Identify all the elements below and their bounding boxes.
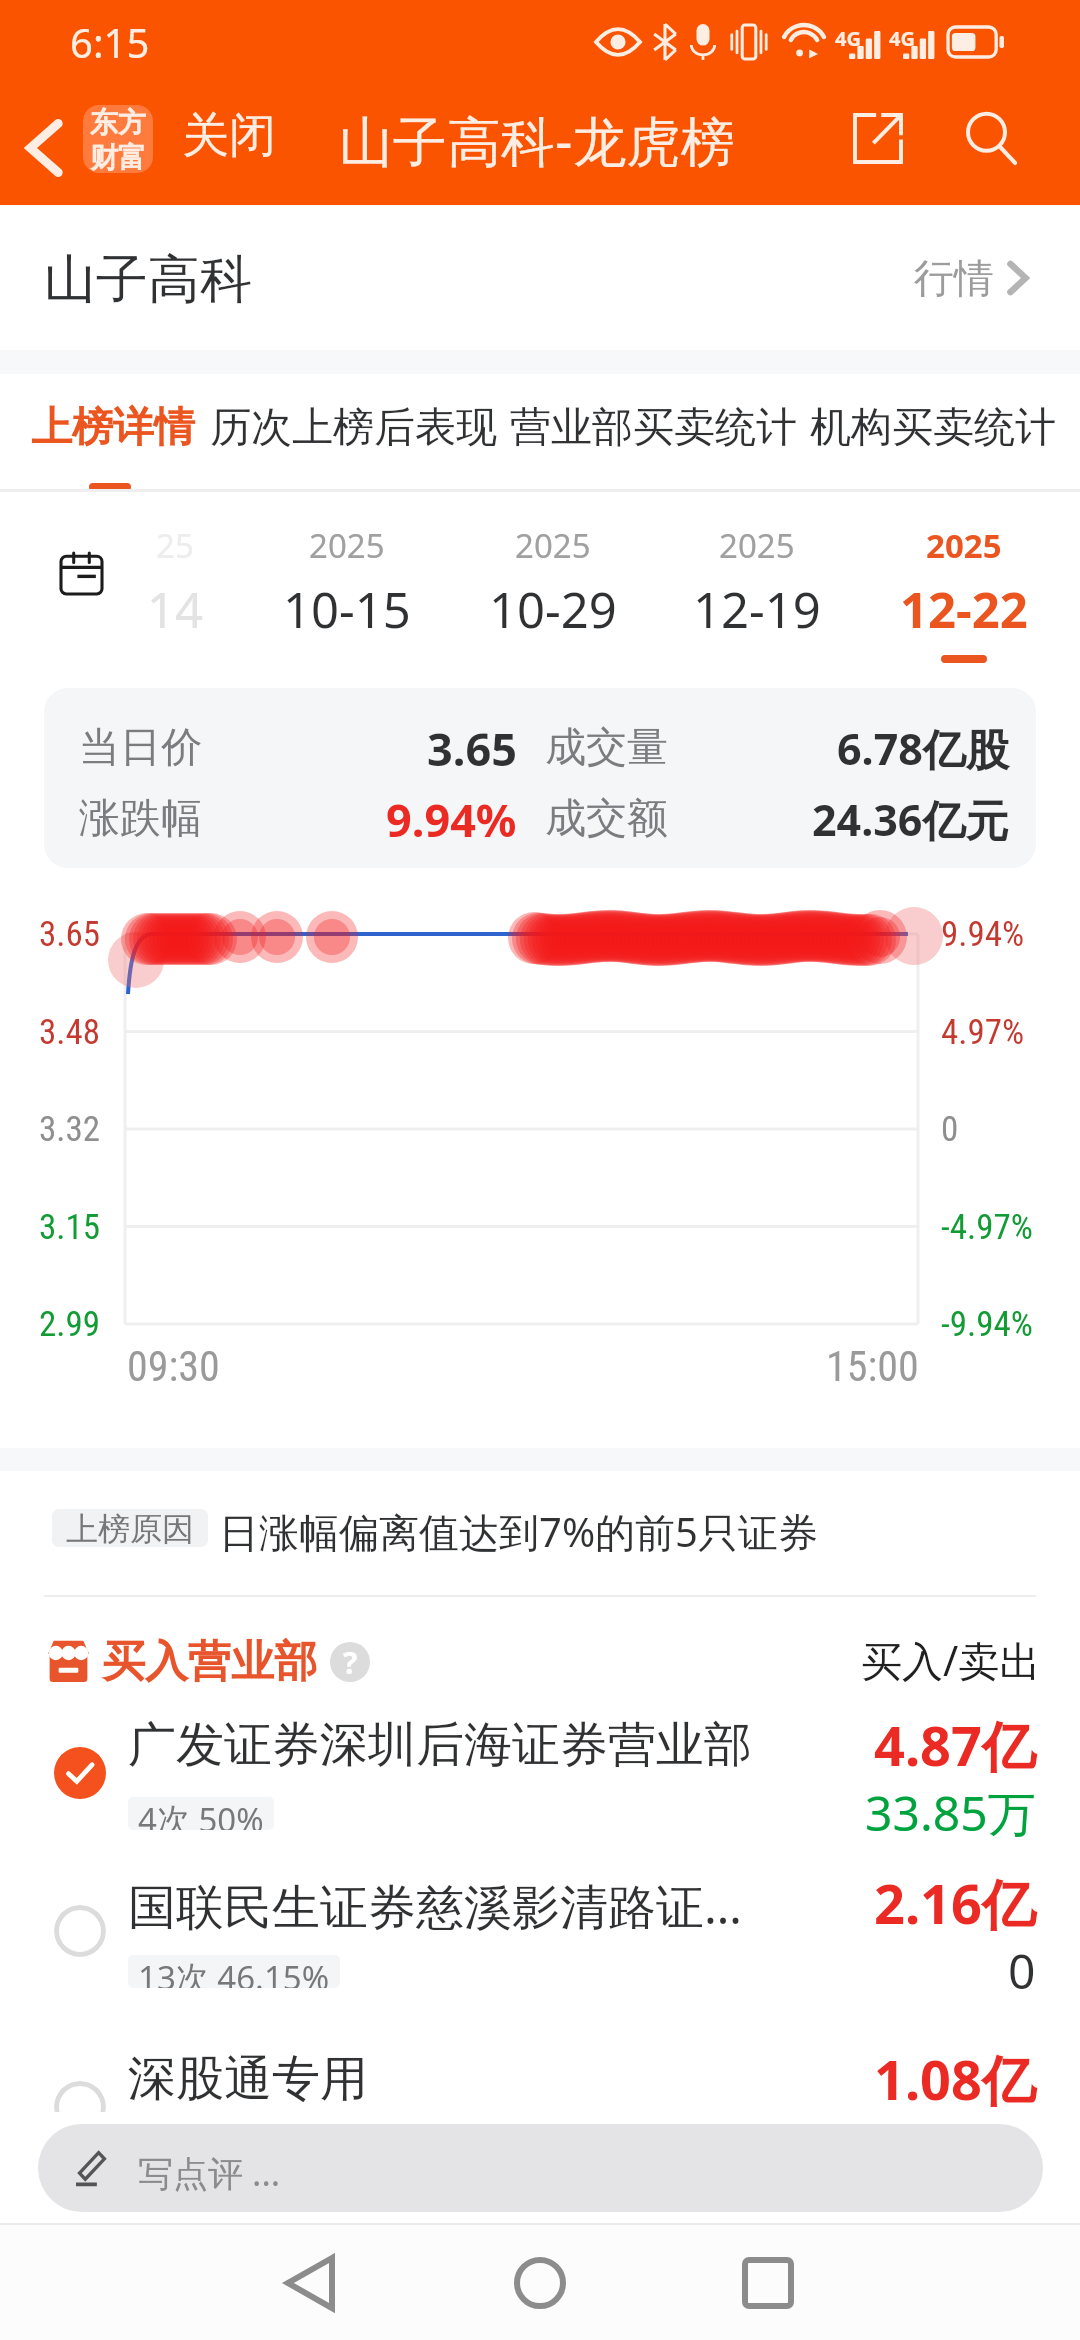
button[interactable]: 东方财富	[83, 105, 153, 173]
staticText: 写点评 ...	[138, 2149, 281, 2197]
staticText: 10-15	[283, 576, 411, 643]
staticText: 2025	[719, 523, 795, 568]
staticText: 3.32	[39, 1109, 101, 1150]
button[interactable]: Calendar	[44, 536, 118, 610]
staticText: 广发证券深圳后海证券营业部	[128, 1715, 752, 1775]
staticText: 国联民生证券慈溪影清路证…	[128, 1873, 742, 1939]
staticText: 12-19	[693, 576, 821, 643]
staticText: 山子高科-龙虎榜	[339, 103, 735, 177]
staticText: 14	[147, 576, 204, 643]
staticText: 上榜详情	[31, 402, 195, 454]
staticText: 1.08亿	[874, 2042, 1036, 2116]
staticText: 买入/卖出	[861, 1632, 1041, 1688]
staticText: 09:30	[127, 1342, 220, 1391]
staticText: 13次 46.15%	[138, 1955, 330, 1988]
staticText: 买入营业部	[102, 1635, 317, 1689]
button[interactable]: 25	[70, 492, 280, 672]
staticText: 2025	[309, 523, 385, 568]
button[interactable]: Back	[250, 2225, 370, 2340]
button[interactable]: 关闭	[174, 98, 284, 173]
button[interactable]: 历次上榜后表现	[204, 392, 503, 464]
staticText: 0	[1008, 1938, 1036, 2003]
staticText: 当日价	[79, 722, 202, 774]
button[interactable]: 上榜详情	[25, 392, 201, 464]
staticText: 4.97%	[941, 1012, 1025, 1053]
staticText: 山子高科	[44, 247, 252, 313]
button[interactable]: 深股通专用	[0, 2034, 1080, 2192]
staticText: 2025	[515, 523, 591, 568]
staticText: 6:15	[70, 15, 150, 69]
staticText: 4G	[835, 25, 861, 52]
staticText: 上榜原因	[66, 1509, 194, 1547]
staticText: 25	[156, 523, 194, 568]
staticText: 关闭	[182, 106, 276, 165]
button[interactable]: Recents	[708, 2225, 828, 2340]
staticText: 2025	[926, 523, 1002, 568]
button[interactable]: 广发证券深圳后海证券营业部	[0, 1718, 1080, 1876]
staticText: 33.85万	[865, 1780, 1036, 1846]
button[interactable]: Help	[330, 1642, 370, 1682]
button[interactable]: 2025	[242, 492, 452, 672]
staticText: 3.15	[39, 1207, 101, 1248]
staticText: 10-29	[489, 576, 617, 643]
staticText: 营业部买卖统计	[510, 402, 797, 454]
staticText: 0	[941, 1109, 959, 1150]
button[interactable]: 2025	[859, 492, 1069, 672]
button[interactable]: Home	[480, 2225, 600, 2340]
button[interactable]: Search	[944, 91, 1040, 187]
staticText: 4次 50%	[138, 1797, 264, 1830]
staticText: 12-22	[900, 576, 1028, 643]
staticText: 涨跌幅	[79, 793, 202, 845]
button[interactable]: 2025	[652, 492, 862, 672]
staticText: 6.78亿股	[837, 719, 1009, 778]
staticText: 机构买卖统计	[810, 402, 1056, 454]
button[interactable]: Back	[0, 94, 88, 202]
staticText: 24.36亿元	[812, 790, 1009, 849]
staticText: 3.48	[39, 1012, 101, 1053]
staticText: ?	[343, 1642, 358, 1682]
staticText: 日涨幅偏离值达到7%的前5只证券	[219, 1504, 818, 1559]
staticText: 4G	[889, 25, 915, 52]
staticText: 成交额	[545, 793, 668, 845]
staticText: -4.97%	[941, 1207, 1033, 1248]
button[interactable]: 国联民生证券慈溪影清路证…	[0, 1876, 1080, 2034]
staticText: 成交量	[545, 722, 668, 774]
staticText: 行情	[914, 253, 994, 303]
staticText: 东方	[90, 105, 146, 140]
button[interactable]: 2025	[448, 492, 658, 672]
button[interactable]: 写点评 ...	[38, 2124, 1043, 2212]
button[interactable]: Share	[830, 90, 926, 186]
staticText: 财富	[90, 140, 146, 173]
staticText: 9.94%	[386, 789, 517, 849]
staticText: 2.99	[39, 1304, 101, 1345]
staticText: 4.87亿	[874, 1708, 1036, 1782]
staticText: 历次上榜后表现	[210, 402, 497, 454]
staticText: 3.65	[39, 914, 101, 955]
staticText: -9.94%	[941, 1304, 1033, 1345]
button[interactable]: 机构买卖统计	[804, 392, 1062, 464]
button[interactable]: 营业部买卖统计	[504, 392, 803, 464]
staticText: 9.94%	[941, 914, 1025, 955]
staticText: 2.16亿	[874, 1866, 1036, 1940]
staticText: 3.65	[427, 718, 517, 778]
staticText: 15:00	[826, 1342, 919, 1391]
button[interactable]: 行情	[902, 239, 1040, 317]
staticText: 深股通专用	[128, 2049, 368, 2109]
